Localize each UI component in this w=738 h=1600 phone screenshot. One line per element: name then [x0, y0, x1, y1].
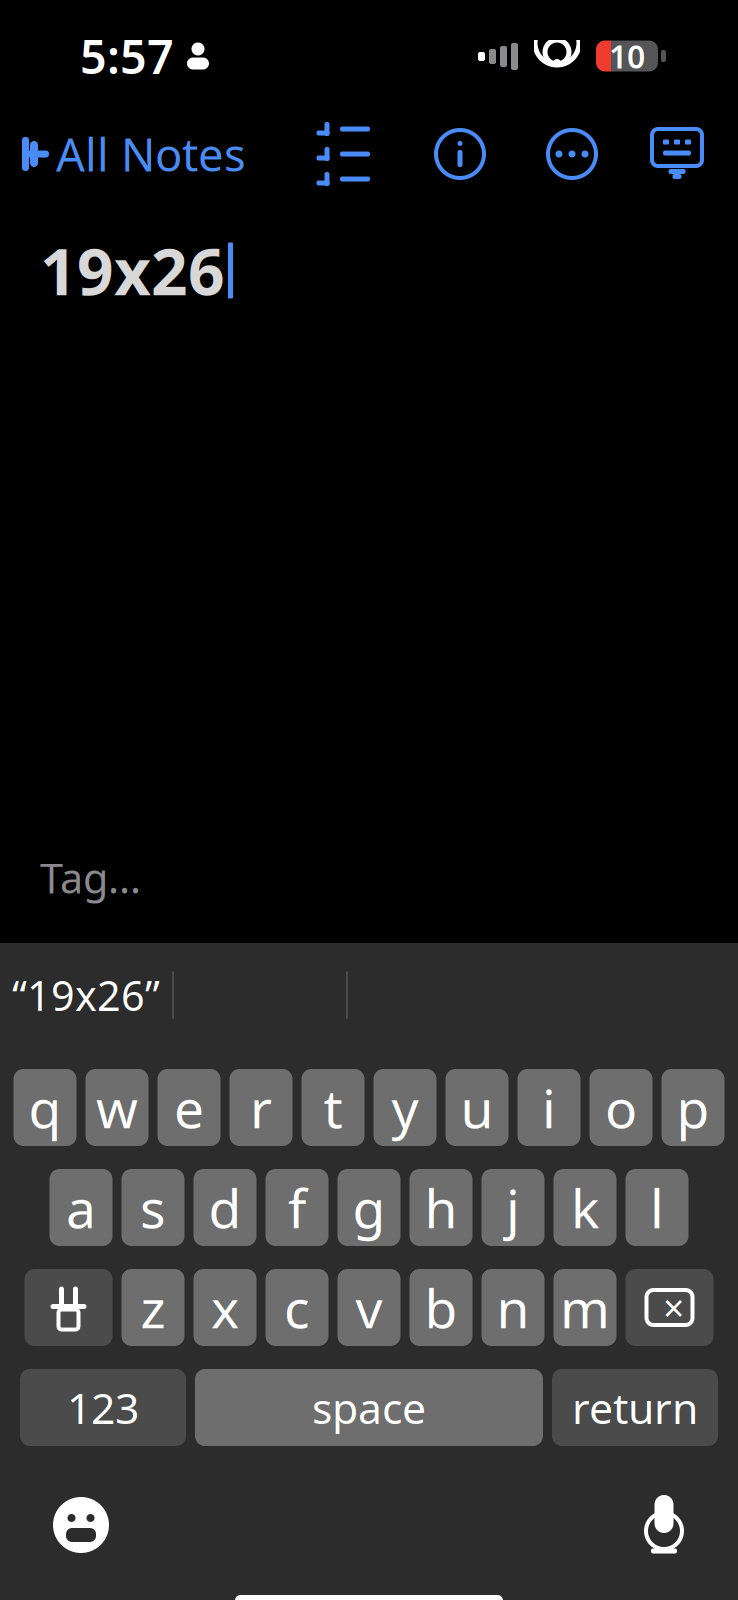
staticText: o	[605, 1072, 637, 1143]
staticText: r	[250, 1072, 272, 1143]
button[interactable]: w	[85, 1069, 148, 1146]
staticText: t	[323, 1072, 342, 1143]
staticText: “19x26”	[12, 968, 160, 1022]
staticText: 5:57	[80, 25, 174, 87]
button[interactable]: e	[157, 1069, 220, 1146]
staticText: space	[312, 1379, 426, 1436]
button[interactable]: o	[589, 1069, 652, 1146]
button[interactable]: space	[195, 1369, 543, 1446]
button[interactable]: b	[409, 1269, 472, 1346]
button[interactable]: f	[265, 1169, 328, 1246]
staticText: m	[560, 1272, 610, 1343]
staticText: 10	[609, 35, 645, 77]
button[interactable]: p	[661, 1069, 724, 1146]
button[interactable]: g	[337, 1169, 400, 1246]
staticText: w	[96, 1072, 138, 1143]
staticText: s	[140, 1172, 166, 1243]
staticText: q	[28, 1072, 61, 1143]
staticText: 123	[67, 1379, 139, 1436]
staticText: j	[506, 1172, 520, 1243]
button[interactable]: t	[301, 1069, 364, 1146]
staticText: e	[174, 1072, 204, 1143]
staticText: g	[352, 1172, 385, 1243]
button[interactable]: k	[553, 1169, 616, 1246]
button[interactable]: All Notes	[0, 110, 246, 198]
button[interactable]: d	[193, 1169, 256, 1246]
button[interactable]: n	[481, 1269, 544, 1346]
button[interactable]: l	[625, 1169, 688, 1246]
staticText: k	[571, 1172, 599, 1243]
button[interactable]: a	[49, 1169, 112, 1246]
button[interactable]: Info	[424, 118, 496, 190]
button[interactable]: s	[121, 1169, 184, 1246]
button[interactable]: u	[445, 1069, 508, 1146]
staticText: z	[140, 1272, 165, 1343]
button[interactable]: Tag...	[34, 840, 147, 915]
button[interactable]: Shift	[24, 1269, 112, 1346]
button[interactable]: z	[121, 1269, 184, 1346]
button[interactable]: m	[553, 1269, 616, 1346]
button[interactable]: Dictation	[628, 1480, 700, 1570]
staticText: return	[572, 1379, 698, 1436]
button[interactable]: Delete	[625, 1269, 713, 1346]
button[interactable]: More	[536, 118, 608, 190]
staticText: 19x26	[40, 228, 225, 313]
staticText: x	[211, 1272, 239, 1343]
button[interactable]: c	[265, 1269, 328, 1346]
button[interactable]: Hide Keyboard	[642, 119, 712, 189]
staticText: Tag...	[40, 850, 141, 905]
button[interactable]: Emoji	[38, 1482, 124, 1568]
button[interactable]: Checklist	[301, 107, 384, 201]
staticText: b	[424, 1272, 457, 1343]
staticText: All Notes	[56, 124, 246, 184]
button[interactable]: h	[409, 1169, 472, 1246]
button[interactable]: “19x26”	[0, 955, 172, 1035]
button[interactable]: 123	[20, 1369, 186, 1446]
button[interactable]: r	[229, 1069, 292, 1146]
staticText: i	[542, 1072, 556, 1143]
staticText: c	[284, 1272, 310, 1343]
button[interactable]: i	[517, 1069, 580, 1146]
button[interactable]: y	[373, 1069, 436, 1146]
staticText: d	[208, 1172, 241, 1243]
staticText: u	[460, 1072, 493, 1143]
button[interactable]: return	[552, 1369, 718, 1446]
staticText: p	[676, 1072, 709, 1143]
staticText: ×	[663, 1283, 684, 1332]
staticText: f	[288, 1172, 306, 1243]
staticText: n	[496, 1272, 529, 1343]
staticText: y	[391, 1072, 418, 1143]
staticText: v	[355, 1272, 382, 1343]
button[interactable]: x	[193, 1269, 256, 1346]
staticText: h	[424, 1172, 457, 1243]
staticText: l	[650, 1172, 664, 1243]
button[interactable]: j	[481, 1169, 544, 1246]
staticText: a	[66, 1172, 96, 1243]
button[interactable]: q	[13, 1069, 76, 1146]
button[interactable]: v	[337, 1269, 400, 1346]
